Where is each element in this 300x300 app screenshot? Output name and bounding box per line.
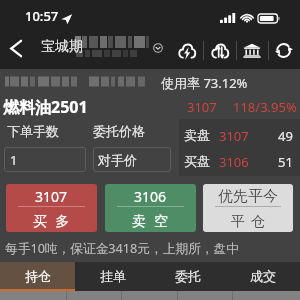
button[interactable]: Back [0,28,31,69]
staticText: 3106 [134,187,167,206]
staticText: 3107 [219,127,249,145]
button[interactable]: 卖盘 [179,121,300,149]
staticText: 卖盘 [184,127,210,143]
staticText: 118/3.95% [233,98,297,116]
button[interactable]: Cloud transfer [204,28,236,69]
staticText: 成交 [250,268,276,284]
staticText: 每手10吨，保证金3418元，上期所，盘中 [5,239,239,256]
button[interactable]: 1 [4,147,86,172]
button[interactable]: 宝城期 [41,28,166,69]
button[interactable]: 燃料油2501 [3,96,88,118]
button[interactable]: Cloud strategy [171,28,203,69]
staticText: 买盘 [184,153,210,169]
staticText: 持仓 [25,268,51,284]
staticText: 3107 [35,187,68,206]
staticText: 委托 [175,268,201,284]
button[interactable]: 3107 [6,184,97,232]
button[interactable]: 挂单 [75,262,150,291]
button[interactable]: 成交 [225,262,300,291]
button[interactable]: 对手价 [93,147,171,172]
staticText: 1 [10,151,18,169]
staticText: 挂单 [100,268,126,284]
button[interactable]: Bank transfer [236,28,268,69]
staticText: 平 仓 [231,211,265,230]
button[interactable]: Refresh [268,28,300,69]
button[interactable]: 优先平今 [203,184,293,232]
staticText: 卖 空 [132,211,169,230]
staticText: 使用率 73.12% [161,74,248,92]
button[interactable]: 买盘 [179,147,300,175]
button[interactable]: 3106 [105,184,196,232]
staticText: 下单手数 [7,123,59,139]
button[interactable]: 委托 [150,262,225,291]
staticText: 3107 [187,98,217,116]
staticText: 51 [278,153,293,171]
staticText: 宝城期 [41,38,83,56]
staticText: 优先平今 [218,187,278,206]
staticText: 10:57 [25,7,59,25]
staticText: 买 多 [33,211,70,230]
staticText: 委托价格 [93,123,145,139]
staticText: 49 [278,127,293,145]
button[interactable]: 持仓 [0,262,75,291]
staticText: 对手价 [98,152,137,168]
staticText: 3106 [219,153,249,171]
